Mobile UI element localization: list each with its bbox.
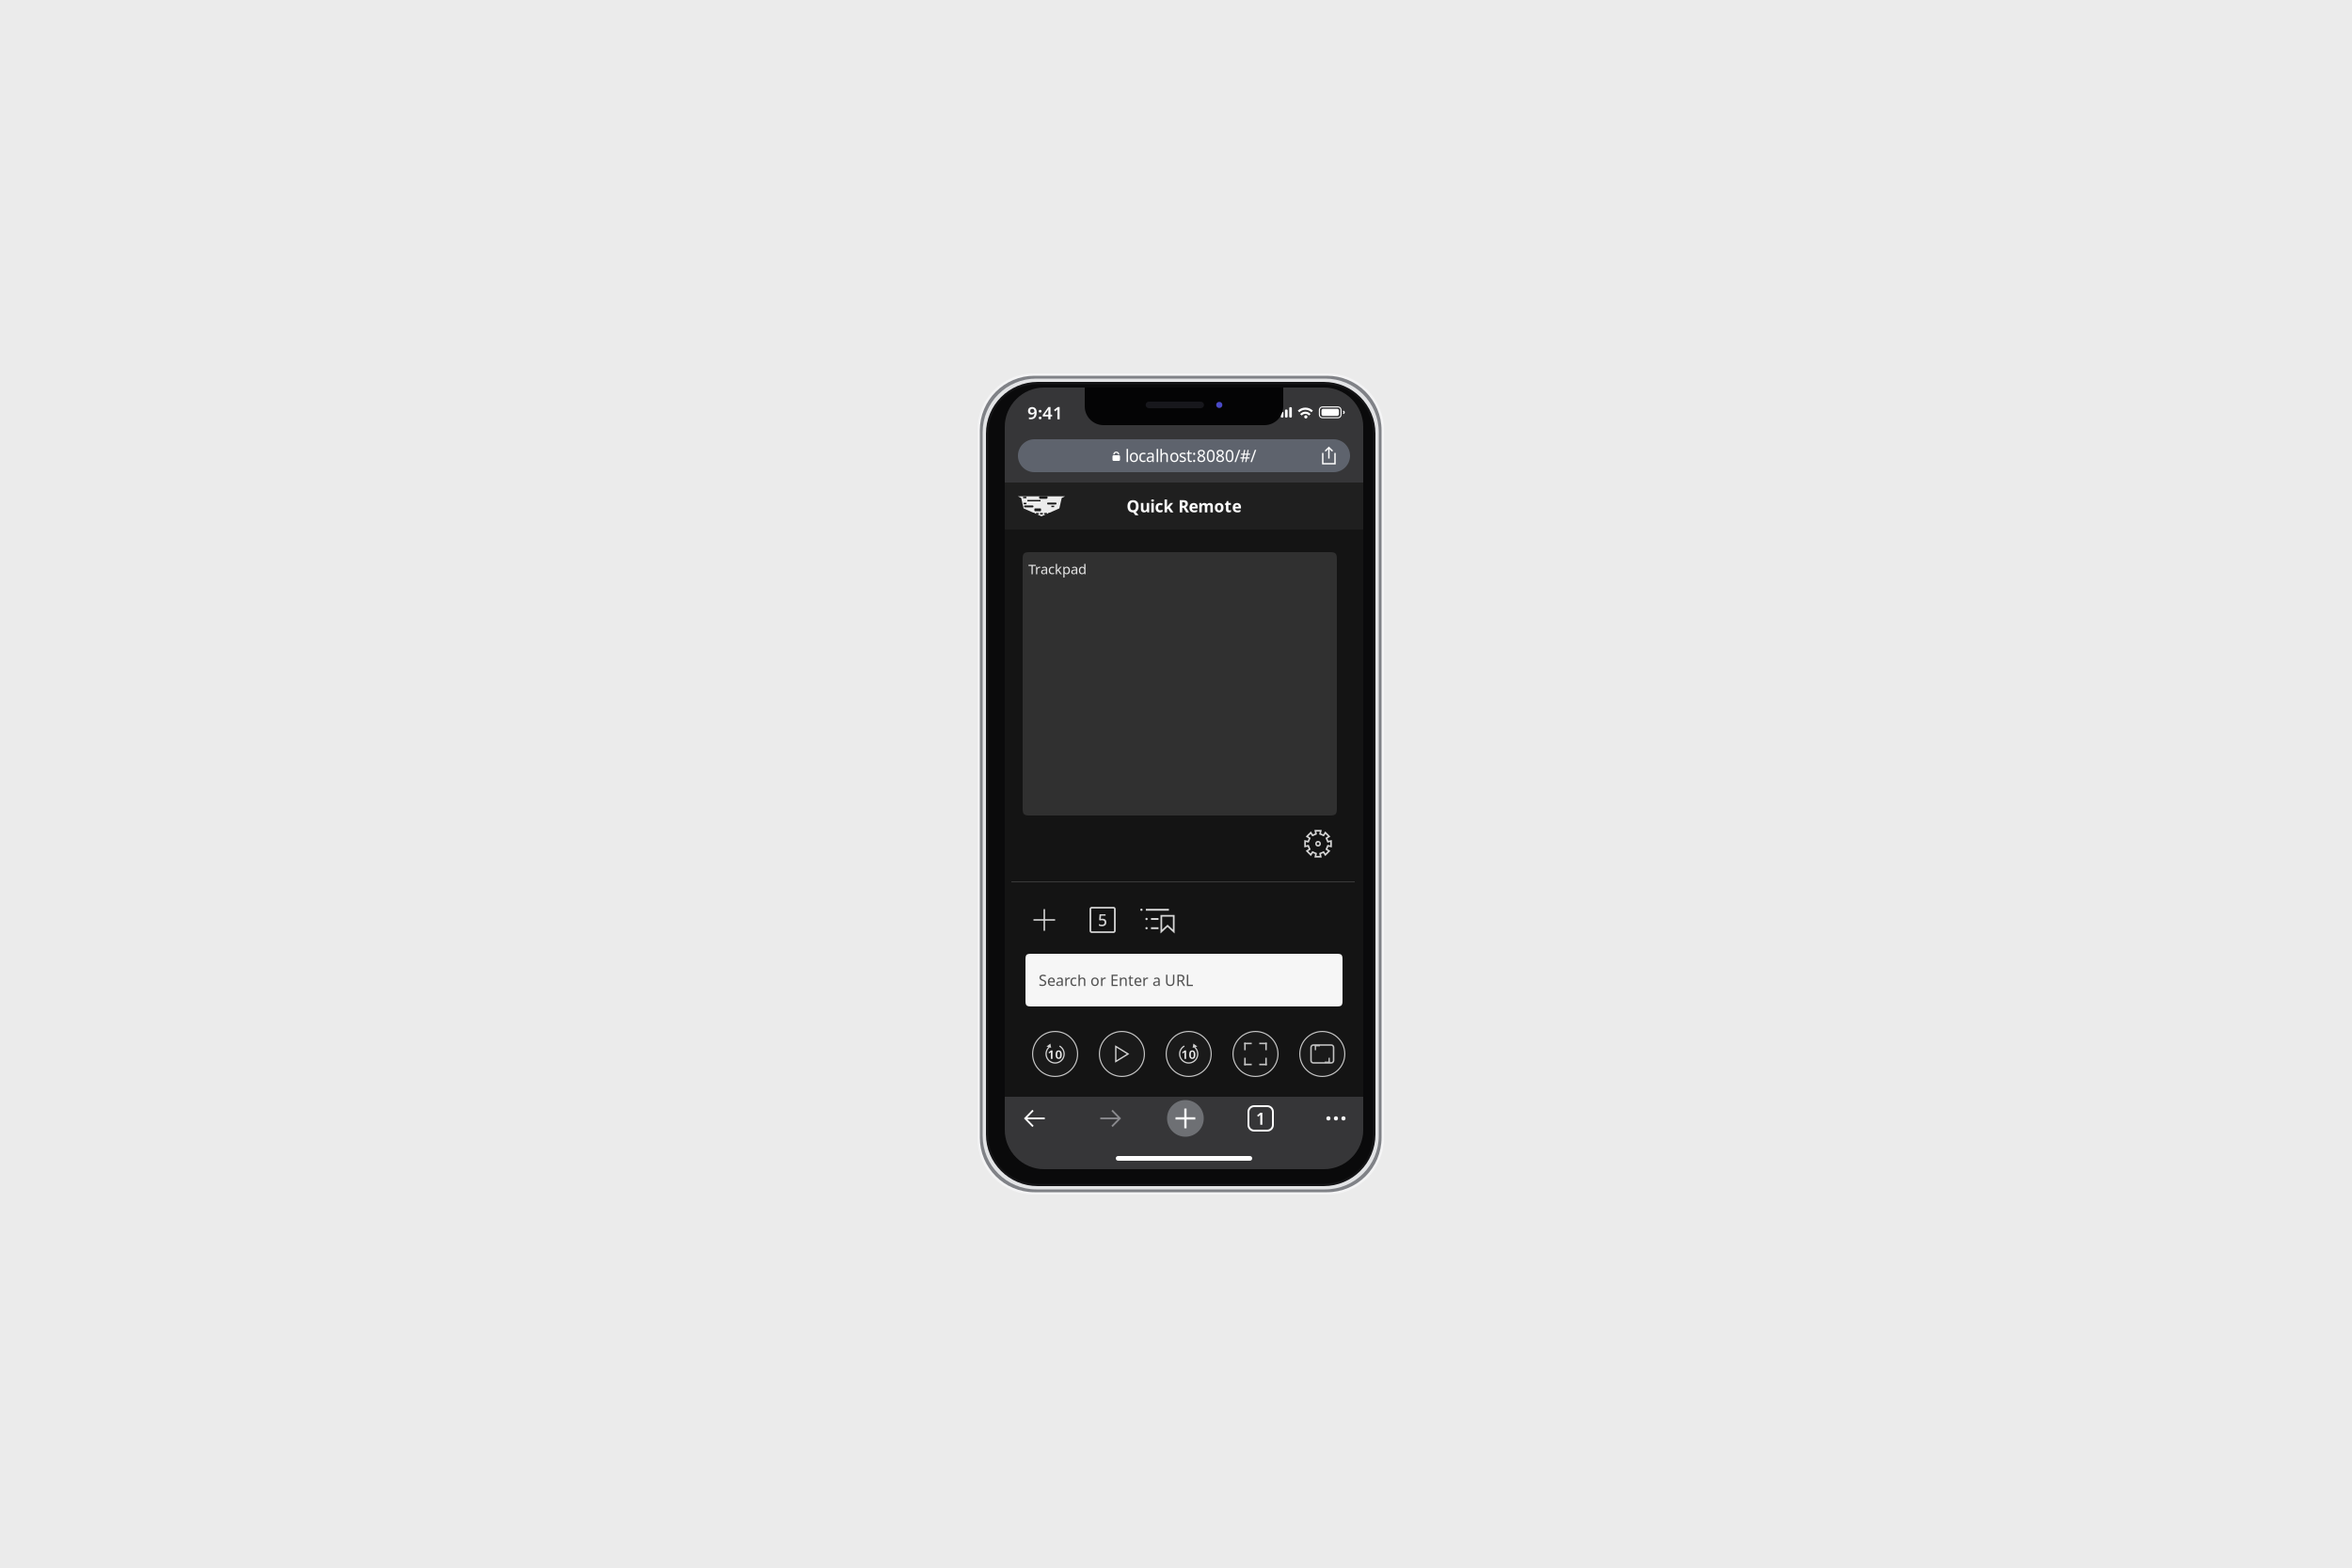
button[interactable]: Back xyxy=(1014,1097,1056,1140)
button[interactable]: Skip back 10 seconds xyxy=(1031,1030,1079,1078)
button[interactable]: More xyxy=(1315,1097,1357,1140)
button[interactable]: New tab xyxy=(1165,1097,1206,1140)
button[interactable]: Tabs xyxy=(1081,899,1124,941)
button[interactable]: Tabs xyxy=(1240,1097,1281,1140)
staticText: Trackpad xyxy=(1028,560,1087,578)
button[interactable]: Skip forward 10 seconds xyxy=(1165,1030,1213,1078)
staticText: 9:41 xyxy=(1027,401,1063,424)
button[interactable]: Reading list xyxy=(1138,899,1182,941)
button[interactable]: Picture in picture xyxy=(1298,1030,1346,1078)
staticText: 10 xyxy=(1181,1046,1196,1062)
button[interactable]: Forward xyxy=(1089,1097,1131,1140)
button[interactable]: localhost:8080/#/ xyxy=(1018,439,1350,483)
button[interactable]: Play xyxy=(1098,1030,1146,1078)
button[interactable]: Settings xyxy=(1298,824,1338,863)
staticText: 5 xyxy=(1098,909,1107,931)
button[interactable]: Full screen xyxy=(1232,1030,1279,1078)
staticText: Search or Enter a URL xyxy=(1039,970,1193,990)
button[interactable]: New xyxy=(1023,899,1066,941)
staticText: localhost:8080/#/ xyxy=(1125,445,1256,467)
staticText: Quick Remote xyxy=(1127,495,1241,517)
button[interactable]: Search or Enter a URL xyxy=(1025,954,1343,1006)
staticText: 10 xyxy=(1048,1046,1063,1062)
staticText: 1 xyxy=(1256,1108,1265,1129)
